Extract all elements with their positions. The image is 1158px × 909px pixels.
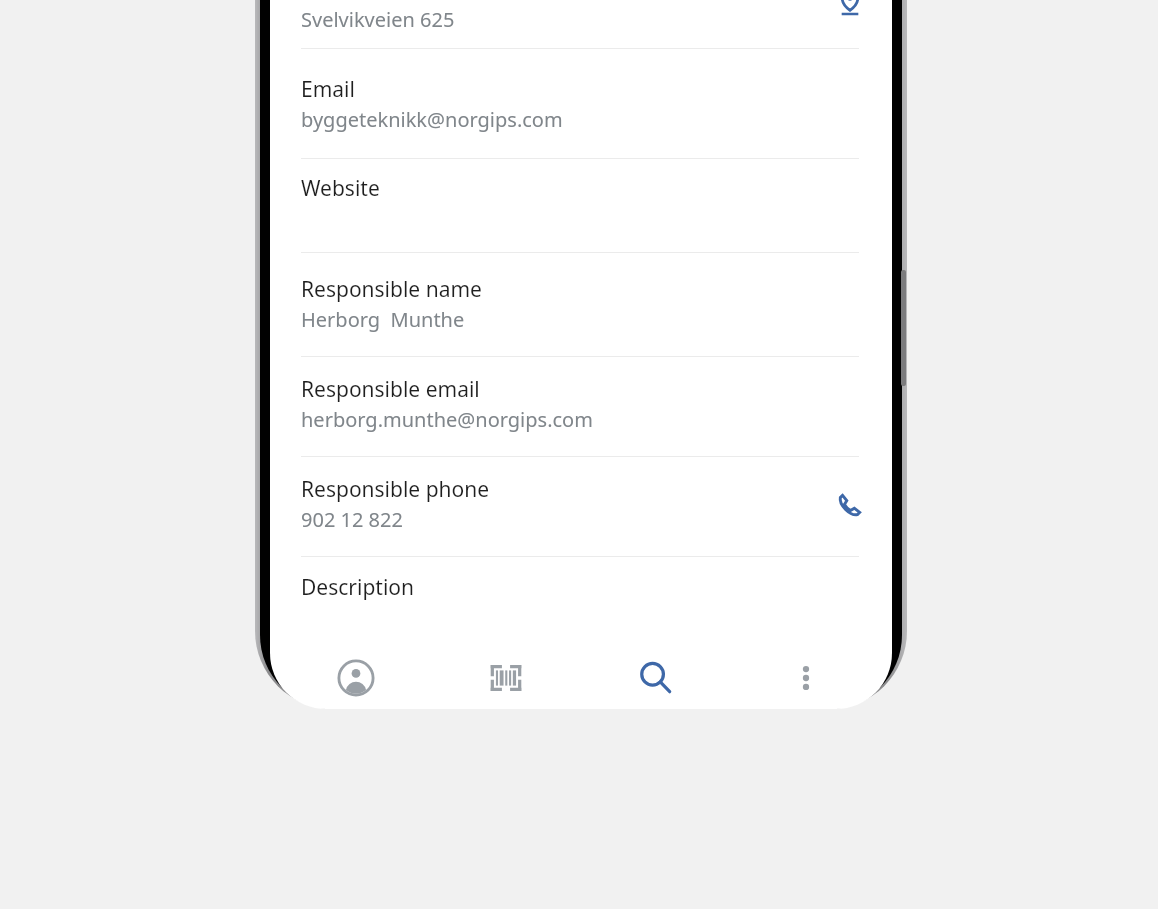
staticText: herborg.munthe@norgips.com (301, 406, 593, 433)
button[interactable]: Search (592, 636, 720, 709)
staticText: Responsible email (301, 375, 480, 404)
button[interactable]: Responsible phone (270, 459, 892, 539)
button[interactable]: Scan (442, 636, 570, 709)
button[interactable]: Email (270, 59, 892, 139)
staticText: 902 12 822 (301, 506, 403, 533)
button[interactable]: Login (292, 636, 420, 709)
staticText: Responsible name (301, 275, 482, 304)
button[interactable]: Website (270, 158, 892, 236)
button[interactable]: Call responsible phone (826, 481, 874, 529)
button[interactable]: Responsible email (270, 359, 892, 439)
staticText: Herborg Munthe (301, 306, 465, 333)
staticText: Website (301, 174, 380, 203)
staticText: byggeteknikk@norgips.com (301, 106, 563, 133)
staticText: Email (301, 75, 355, 104)
staticText: Responsible phone (301, 475, 490, 504)
staticText: Svelvikveien 625 (301, 6, 455, 33)
button[interactable]: More (742, 636, 870, 709)
button[interactable]: Description (270, 557, 892, 635)
button[interactable]: Responsible name (270, 259, 892, 339)
button[interactable]: Open map location (826, 0, 874, 26)
staticText: Description (301, 573, 415, 602)
